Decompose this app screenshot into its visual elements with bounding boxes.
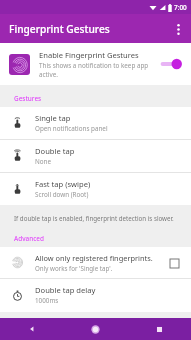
button[interactable]: Recent apps — [127, 318, 191, 340]
button[interactable]: Double tap — [0, 140, 191, 172]
staticText: 1000ms — [35, 296, 59, 305]
button[interactable]: Home — [63, 318, 127, 340]
staticText: Fast tap (swipe) — [35, 179, 91, 189]
staticText: Only works for 'Single tap'. — [35, 264, 113, 272]
button[interactable]: Back — [0, 318, 63, 340]
button[interactable]: Double tap delay — [0, 279, 191, 312]
button[interactable]: Fast tap (swipe) — [0, 173, 191, 205]
staticText: Enable Fingerprint Gestures — [39, 50, 139, 60]
staticText: None — [35, 157, 52, 166]
staticText: This shows a notification to keep app ac… — [39, 61, 154, 78]
button[interactable]: Enable Fingerprint Gestures — [0, 43, 191, 85]
staticText: Open notifications panel — [35, 124, 108, 133]
staticText: Double tap — [35, 146, 75, 156]
staticText: Single tap — [35, 113, 71, 123]
staticText: Scroll down (Root) — [35, 190, 89, 199]
button[interactable]: More options — [165, 16, 191, 42]
staticText: 7:00 — [174, 3, 187, 12]
button[interactable]: Allow only registered fingerprints. — [0, 247, 191, 278]
staticText: Double tap delay — [35, 285, 96, 295]
staticText: Allow only registered fingerprints. — [35, 253, 153, 263]
button[interactable]: Enable Fingerprint Gestures toggle — [158, 54, 184, 74]
staticText: Fingerprint Gestures — [9, 22, 110, 36]
staticText: Advanced — [14, 234, 44, 243]
button[interactable]: Single tap — [0, 107, 191, 139]
staticText: Gestures — [14, 94, 42, 103]
staticText: If double tap is enabled, fingerprint de… — [14, 214, 181, 222]
button[interactable]: Allow only registered fingerprints check… — [166, 255, 182, 271]
